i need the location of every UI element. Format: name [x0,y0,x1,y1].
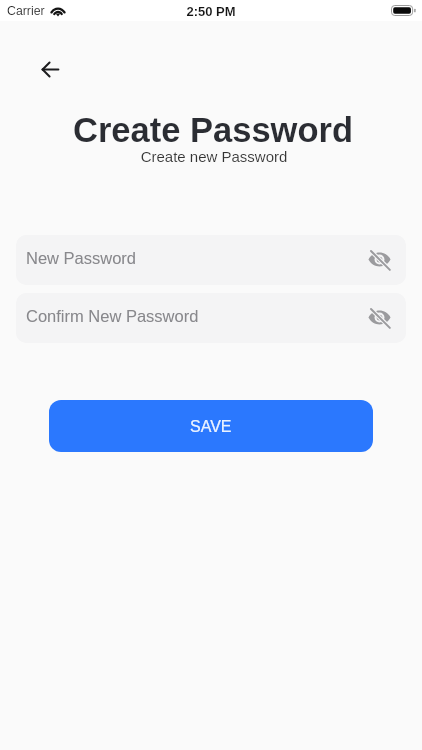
staticText: New Password [26,249,137,267]
staticText: Create Password [2,111,422,150]
staticText: Confirm New Password [26,307,199,325]
staticText: Create new Password [3,148,422,165]
button[interactable]: Back [30,49,70,89]
button[interactable]: Confirm New Password [16,293,406,343]
staticText: SAVE [190,418,232,436]
button[interactable]: Show password [368,306,392,330]
staticText: 2:50 PM [0,4,422,19]
button[interactable]: Show password [368,248,392,272]
button[interactable]: New Password [16,235,406,285]
button[interactable]: SAVE [49,400,373,452]
staticText: Carrier [7,4,45,18]
